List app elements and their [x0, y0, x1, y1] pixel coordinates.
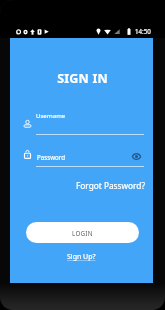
staticText: Password [37, 153, 65, 161]
button[interactable]: Forgot Password? [76, 180, 146, 191]
other: Password [24, 150, 31, 159]
other: Username [24, 120, 31, 128]
staticText: Forgot Password? [76, 180, 146, 191]
staticText: LOGIN [72, 229, 93, 237]
button[interactable]: Sign Up? [66, 251, 97, 263]
staticText: 14:50 [135, 27, 151, 35]
staticText: Username [36, 112, 66, 120]
button[interactable]: LOGIN [26, 222, 139, 243]
button[interactable]: Show password [132, 152, 141, 161]
staticText: SIGN IN [11, 70, 154, 87]
